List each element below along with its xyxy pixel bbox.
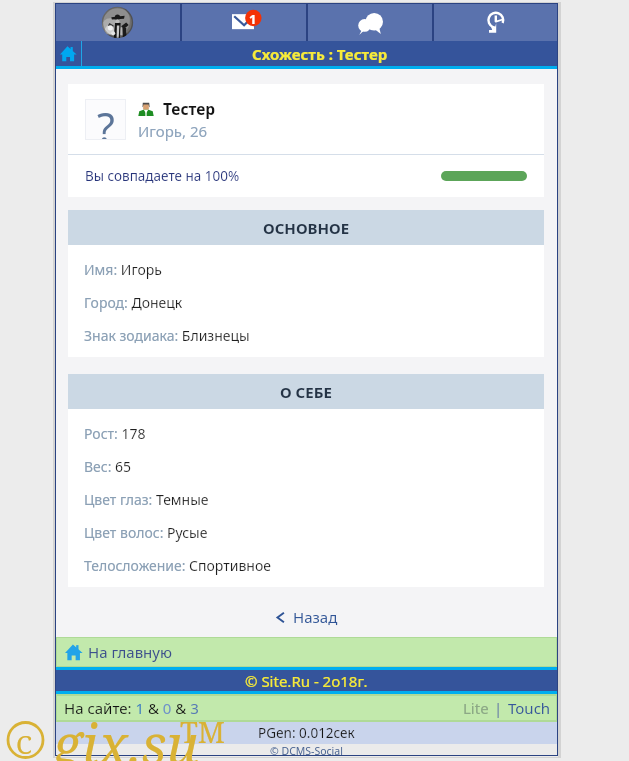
button[interactable]: ? bbox=[68, 84, 544, 197]
staticText: 1 bbox=[249, 10, 257, 26]
staticText: © DCMS-Social bbox=[270, 744, 343, 757]
staticText: Телосложение: Спортивное bbox=[84, 556, 271, 575]
button[interactable]: Знак зодиака: Близнецы bbox=[84, 319, 528, 352]
staticText: gix.su bbox=[52, 706, 199, 761]
button[interactable]: Город: Донецк bbox=[84, 286, 528, 319]
button[interactable]: Chats bbox=[308, 4, 432, 41]
staticText: Вы совпадаете на 100% bbox=[85, 167, 240, 185]
staticText: О СЕБЕ bbox=[280, 382, 332, 402]
staticText: © Site.Ru - 2o18г. bbox=[245, 671, 368, 691]
button[interactable]: Вес: 65 bbox=[84, 450, 528, 483]
staticText: Город: Донецк bbox=[84, 293, 183, 312]
staticText: TM bbox=[180, 712, 225, 751]
button[interactable]: Рост: 178 bbox=[84, 417, 528, 450]
staticText: Цвет волос: Русые bbox=[84, 523, 208, 542]
button[interactable]: Телосложение: Спортивное bbox=[84, 549, 528, 582]
staticText: | bbox=[494, 698, 503, 718]
button[interactable]: Назад bbox=[55, 601, 558, 633]
staticText: PGen: 0.012сек bbox=[258, 724, 355, 742]
button[interactable]: На главную bbox=[57, 638, 556, 666]
button[interactable]: Profile bbox=[55, 4, 180, 41]
staticText: Игорь, 26 bbox=[138, 121, 208, 141]
staticText: Цвет глаз: Темные bbox=[84, 490, 209, 509]
staticText: Тестер bbox=[163, 98, 216, 119]
staticText: ОСНОВНОЕ bbox=[263, 218, 350, 238]
staticText: ? bbox=[97, 99, 115, 140]
button[interactable]: Lite bbox=[463, 698, 489, 718]
button[interactable]: Home bbox=[55, 41, 81, 66]
staticText: Вес: 65 bbox=[84, 457, 132, 476]
staticText: Рост: 178 bbox=[84, 424, 146, 443]
button[interactable]: Имя: Игорь bbox=[84, 253, 528, 286]
staticText: C bbox=[16, 726, 32, 761]
staticText: Схожесть : Тестер bbox=[252, 44, 388, 64]
staticText: Знак зодиака: Близнецы bbox=[84, 326, 250, 345]
button[interactable]: History bbox=[434, 4, 558, 41]
staticText: На сайте: 1 & 0 & 3 bbox=[64, 698, 199, 718]
staticText: Назад bbox=[293, 607, 338, 627]
button[interactable]: Messages bbox=[182, 4, 306, 41]
button[interactable]: Цвет глаз: Темные bbox=[84, 483, 528, 516]
staticText: На главную bbox=[88, 642, 172, 662]
staticText: Имя: Игорь bbox=[84, 260, 162, 279]
button[interactable]: Touch bbox=[508, 698, 551, 718]
button[interactable]: Цвет волос: Русые bbox=[84, 516, 528, 549]
